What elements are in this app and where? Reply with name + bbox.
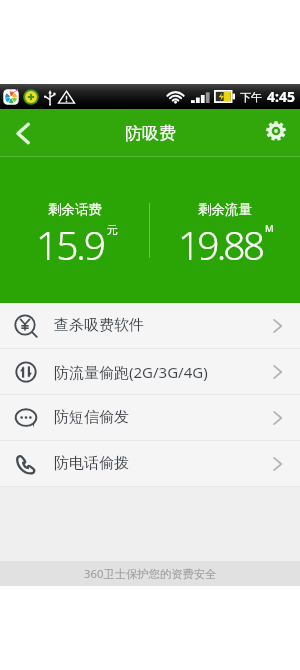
staticText: 360卫士保护您的资费安全 <box>84 566 217 581</box>
staticText: 15.9 <box>36 218 104 271</box>
button[interactable]: 防短信偷发 <box>0 395 300 440</box>
staticText: 防电话偷拨 <box>54 454 129 473</box>
staticText: M <box>265 222 274 235</box>
staticText: 元 <box>107 223 118 237</box>
staticText: 下午 <box>240 90 262 104</box>
button[interactable]: 防电话偷拨 <box>0 441 300 486</box>
staticText: 查杀吸费软件 <box>54 316 144 335</box>
staticText: 4:45 <box>267 87 295 106</box>
button[interactable]: Settings <box>254 110 300 156</box>
staticText: 剩余流量 <box>198 201 252 218</box>
staticText: 防吸费 <box>125 123 176 144</box>
staticText: 防流量偷跑(2G/3G/4G) <box>54 362 208 382</box>
staticText: 防短信偷发 <box>54 408 129 427</box>
staticText: 剩余话费 <box>48 201 102 218</box>
button[interactable]: 查杀吸费软件 <box>0 303 300 348</box>
staticText: 19.88 <box>178 218 263 271</box>
button[interactable]: Back <box>0 110 46 156</box>
button[interactable]: 防流量偷跑(2G/3G/4G) <box>0 349 300 394</box>
